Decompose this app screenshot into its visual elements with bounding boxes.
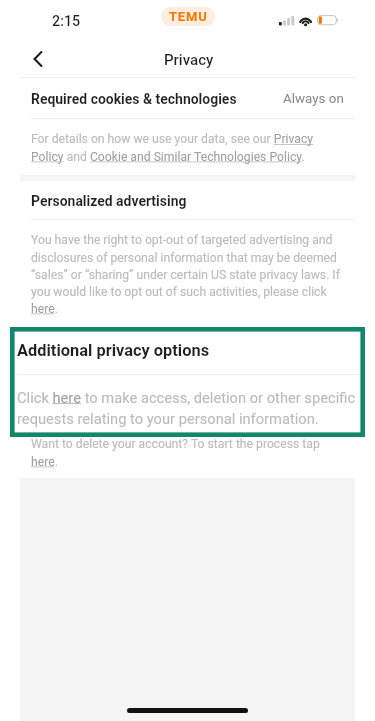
staticText: Additional privacy options [17,341,210,360]
button[interactable]: Additional privacy options [14,331,361,369]
staticText: Click here to make access, deletion or o… [17,389,361,427]
staticText: You have the right to opt-out of targete… [31,233,347,316]
staticText: Required cookies & technologies [31,91,237,107]
staticText: Privacy [164,51,214,69]
button[interactable]: Personalized advertising [0,189,375,213]
staticText: Personalized advertising [31,193,187,209]
staticText: For details on how we use your data, see… [31,132,345,164]
staticText: 2:15 [52,13,81,30]
button[interactable]: Additional privacy options [0,330,375,354]
button[interactable]: Back [22,45,54,73]
button[interactable]: Want to delete your account? To start th… [31,437,347,469]
staticText: Additional privacy options [31,334,195,350]
button[interactable]: Required cookies & technologies [0,86,375,112]
staticText: Always on [283,91,344,107]
staticText: TEMU [169,9,208,24]
